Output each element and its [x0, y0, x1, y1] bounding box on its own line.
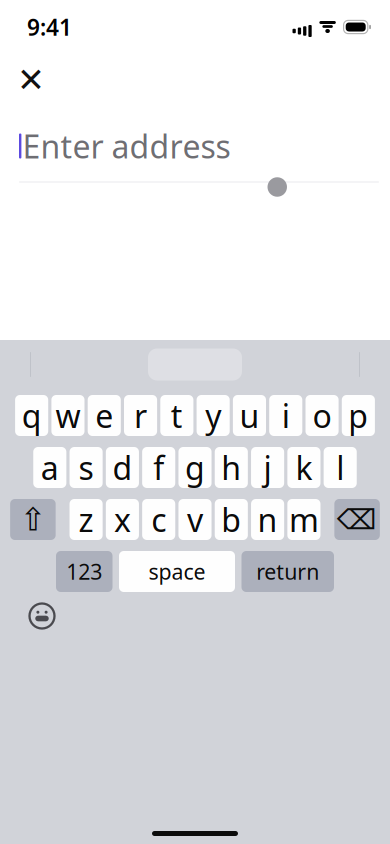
button[interactable]: c	[142, 499, 175, 540]
button[interactable]: i	[269, 395, 302, 436]
button[interactable]: n	[251, 499, 284, 540]
button[interactable]: m	[287, 499, 320, 540]
staticText: 123	[66, 557, 102, 586]
staticText: ✕	[17, 61, 45, 99]
button[interactable]: 123	[56, 551, 112, 592]
staticText: j	[264, 446, 272, 489]
staticText: x	[114, 498, 131, 541]
button[interactable]: s	[69, 447, 103, 488]
staticText: o	[313, 394, 332, 437]
staticText: q	[22, 394, 42, 437]
staticText: h	[221, 446, 241, 489]
button[interactable]: y	[197, 395, 230, 436]
staticText: 9:41	[27, 12, 72, 42]
staticText: n	[258, 498, 278, 541]
button[interactable]: x	[106, 499, 139, 540]
staticText: ⇧	[19, 501, 46, 538]
button[interactable]: Close	[9, 58, 53, 102]
button[interactable]: Emoji keyboard	[22, 596, 62, 636]
button[interactable]: r	[124, 395, 157, 436]
staticText: f	[153, 446, 164, 489]
staticText: u	[239, 394, 259, 437]
button[interactable]: l	[324, 447, 357, 488]
staticText: e	[95, 394, 113, 437]
button[interactable]: return	[241, 551, 334, 592]
button[interactable]: j	[251, 447, 284, 488]
button[interactable]: h	[215, 447, 248, 488]
button[interactable]: g	[178, 447, 211, 488]
staticText: r	[134, 394, 147, 437]
staticText: l	[336, 446, 344, 489]
button[interactable]: u	[233, 395, 266, 436]
staticText: d	[112, 446, 132, 489]
staticText: return	[256, 557, 319, 586]
staticText: s	[79, 446, 94, 489]
staticText: y	[205, 394, 221, 437]
staticText: k	[295, 446, 312, 489]
staticText: Enter address	[22, 125, 230, 167]
button[interactable]: v	[178, 499, 212, 540]
staticText: ⌫	[337, 504, 377, 535]
staticText: b	[221, 498, 241, 541]
staticText: t	[171, 394, 183, 437]
button[interactable]: Delete	[334, 499, 380, 540]
staticText: c	[151, 498, 166, 541]
staticText: m	[289, 498, 319, 541]
button[interactable]: b	[215, 499, 248, 540]
staticText: v	[187, 498, 203, 541]
staticText: g	[185, 446, 205, 489]
button[interactable]: a	[33, 447, 66, 488]
staticText: p	[348, 394, 368, 437]
button[interactable]: p	[342, 395, 375, 436]
button[interactable]: o	[305, 395, 339, 436]
button[interactable]: t	[160, 395, 193, 436]
button[interactable]: z	[70, 499, 103, 540]
button[interactable]: Shift	[10, 499, 56, 540]
button[interactable]: f	[142, 447, 175, 488]
button[interactable]: e	[88, 395, 121, 436]
staticText: a	[41, 446, 59, 489]
button[interactable]: space	[119, 551, 235, 592]
staticText: w	[55, 394, 80, 437]
button[interactable]: q	[15, 395, 48, 436]
button[interactable]: k	[287, 447, 320, 488]
staticText: space	[148, 557, 205, 586]
button[interactable]: w	[51, 395, 84, 436]
button[interactable]: d	[106, 447, 139, 488]
staticText: i	[282, 394, 290, 437]
staticText: z	[79, 498, 94, 541]
